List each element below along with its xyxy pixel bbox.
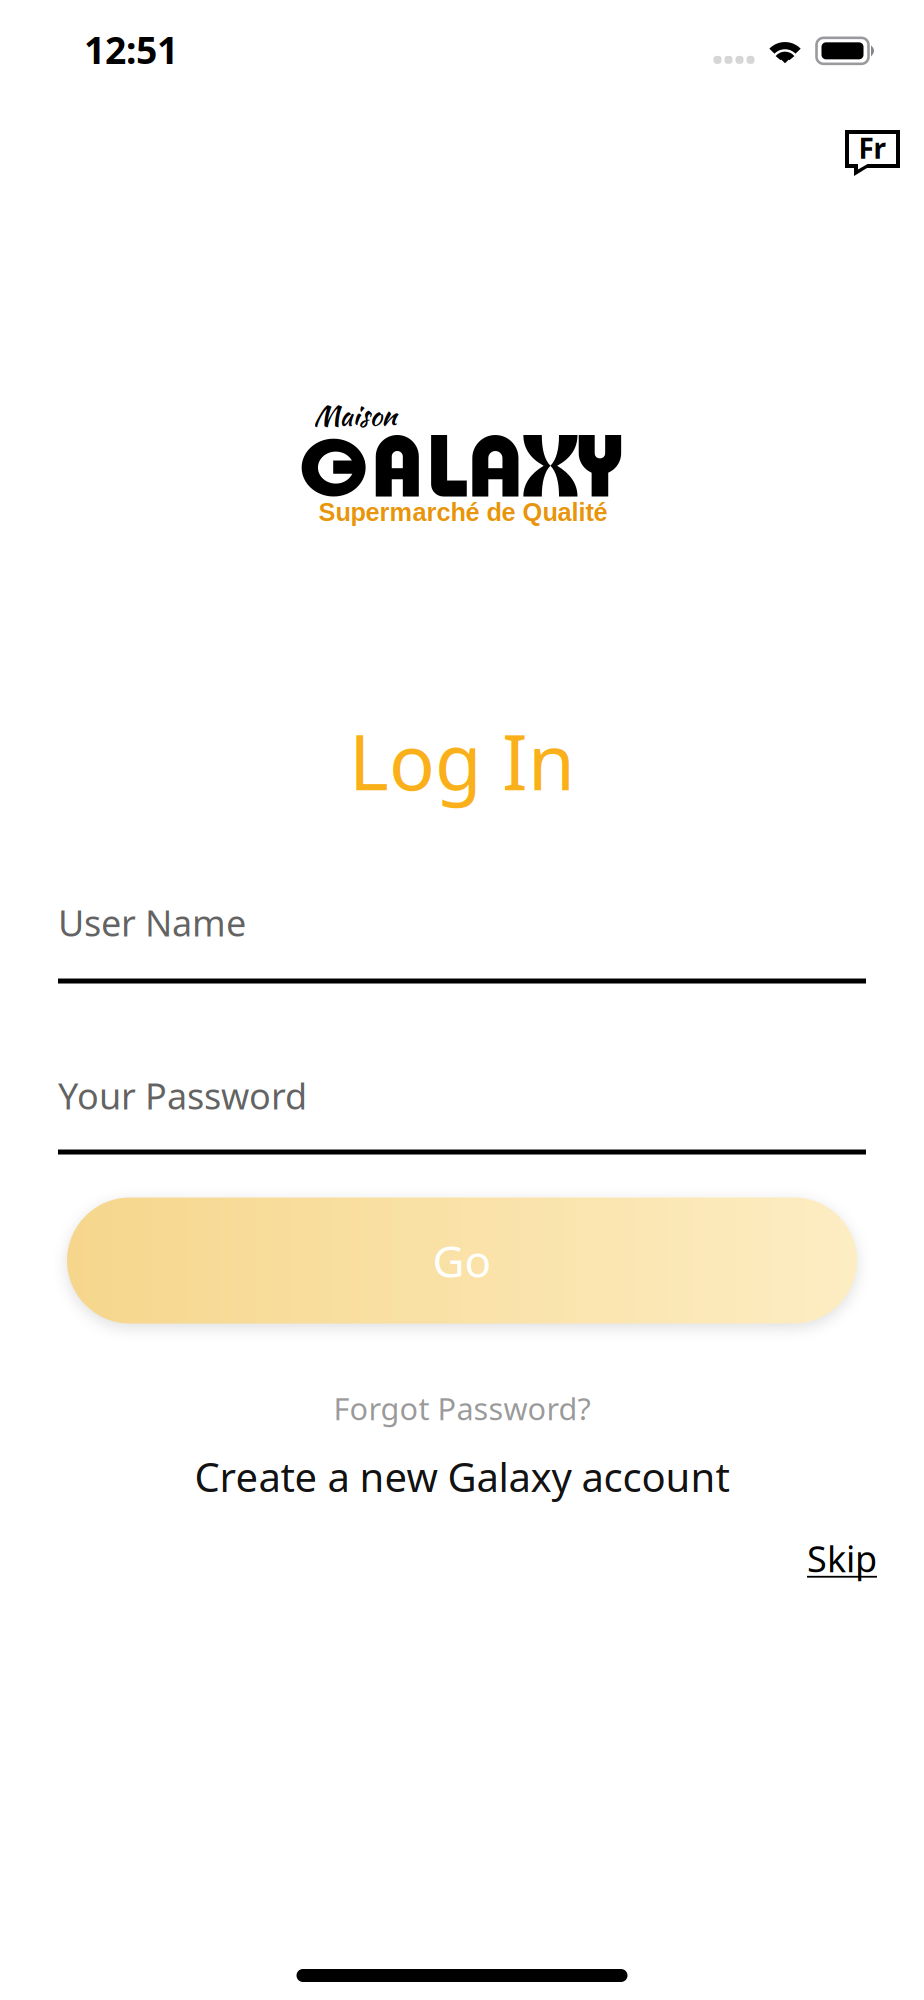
staticText: Maison — [313, 395, 396, 436]
staticText: Go — [432, 1230, 491, 1290]
staticText: Skip — [807, 1534, 877, 1583]
staticText: Fr — [858, 129, 886, 167]
staticText: Your Password — [58, 1071, 307, 1120]
staticText: Log In — [349, 709, 575, 812]
button[interactable]: Forgot Password? — [333, 1387, 590, 1429]
staticText: 12:51 — [84, 24, 178, 75]
button[interactable]: Go — [67, 1197, 857, 1323]
staticText: Create a new Galaxy account — [194, 1449, 729, 1504]
staticText: Forgot Password? — [333, 1387, 590, 1429]
button[interactable]: Skip — [807, 1534, 877, 1583]
button[interactable]: Language: French — [845, 130, 901, 177]
button[interactable]: Create a new Galaxy account — [194, 1449, 729, 1504]
staticText: User Name — [58, 898, 246, 947]
staticText: Supermarché de Qualité — [318, 498, 607, 526]
